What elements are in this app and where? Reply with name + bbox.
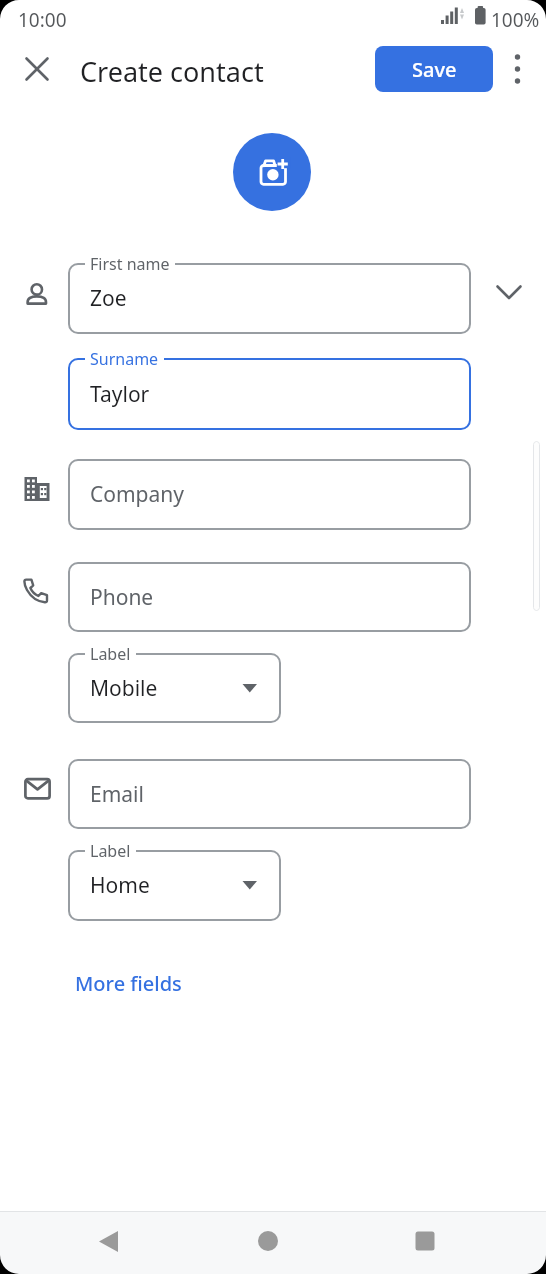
button[interactable]: Zoe bbox=[68, 263, 471, 334]
staticText: Phone bbox=[90, 583, 154, 612]
button[interactable] bbox=[403, 1227, 447, 1255]
button[interactable]: More fields bbox=[75, 970, 182, 997]
staticText: 100% bbox=[491, 7, 540, 33]
button[interactable]: Taylor bbox=[68, 358, 471, 430]
staticText: Zoe bbox=[90, 284, 127, 313]
staticText: Create contact bbox=[80, 53, 264, 90]
staticText: Mobile bbox=[90, 674, 158, 703]
button[interactable] bbox=[505, 50, 529, 88]
staticText: Surname bbox=[90, 348, 159, 370]
staticText: Home bbox=[90, 871, 150, 900]
button[interactable]: Mobile bbox=[68, 653, 281, 723]
staticText: Save bbox=[412, 56, 457, 83]
button[interactable] bbox=[233, 133, 311, 211]
staticText: First name bbox=[90, 253, 170, 275]
button[interactable] bbox=[88, 1229, 132, 1257]
staticText: Company bbox=[90, 480, 184, 509]
button[interactable] bbox=[246, 1227, 290, 1255]
button[interactable]: Email bbox=[68, 759, 471, 829]
button[interactable]: Company bbox=[68, 459, 471, 530]
button[interactable] bbox=[495, 279, 523, 307]
staticText: Taylor bbox=[90, 380, 150, 409]
button[interactable]: Save bbox=[375, 46, 493, 92]
button[interactable] bbox=[23, 55, 51, 83]
button[interactable]: Home bbox=[68, 850, 281, 921]
staticText: Label bbox=[90, 840, 131, 862]
staticText: Email bbox=[90, 780, 144, 809]
button[interactable]: Phone bbox=[68, 562, 471, 632]
staticText: 10:00 bbox=[18, 7, 67, 33]
staticText: More fields bbox=[75, 970, 182, 997]
staticText: Label bbox=[90, 643, 131, 665]
